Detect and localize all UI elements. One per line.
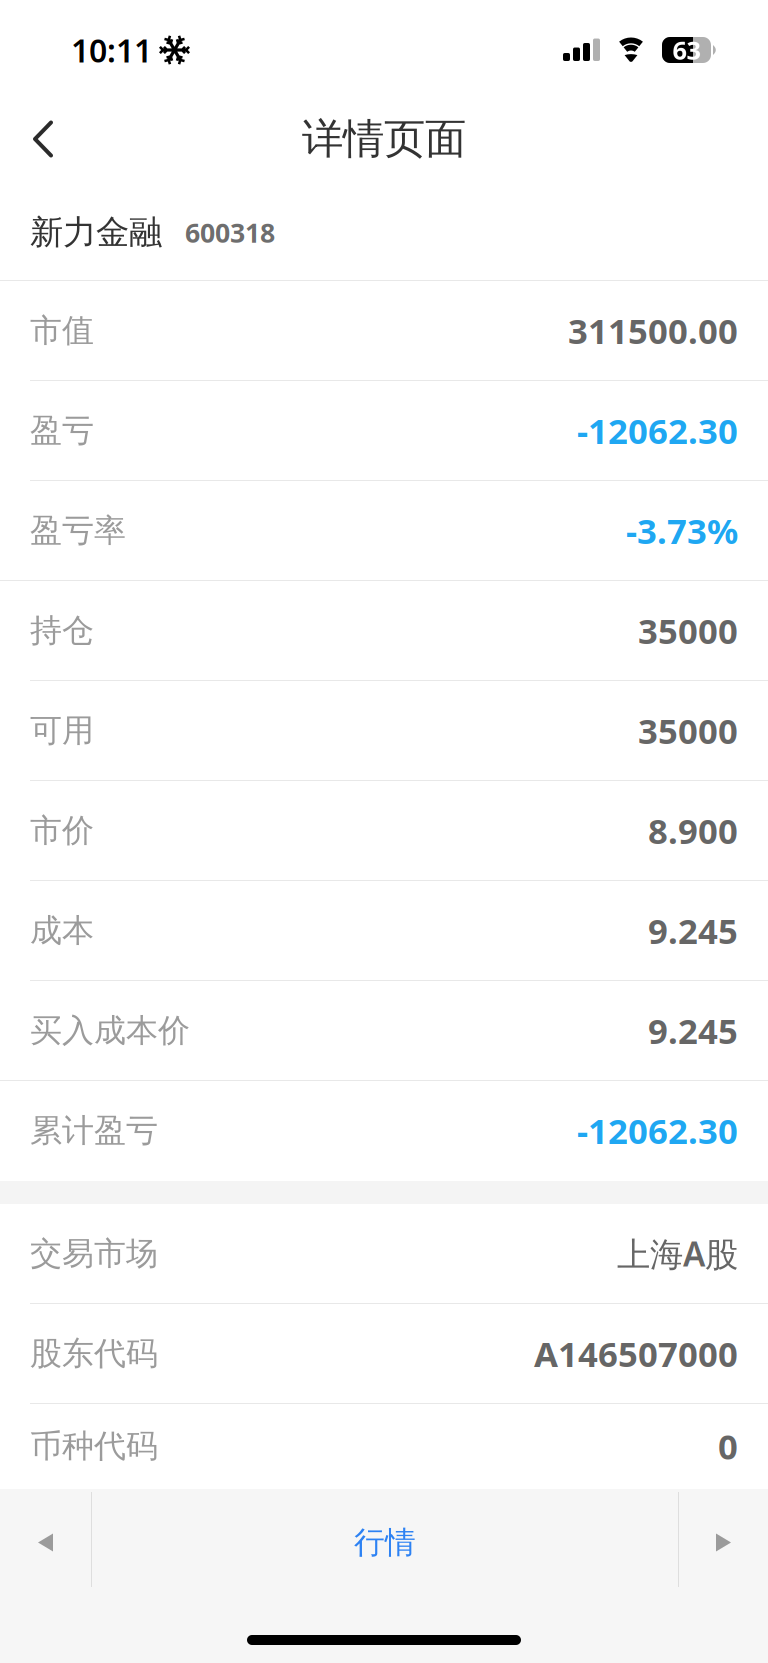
button[interactable]: 可用 <box>0 681 768 781</box>
button[interactable]: 持仓 <box>0 581 768 681</box>
staticText: 35000 <box>638 607 738 653</box>
button[interactable]: 盈亏 <box>0 381 768 481</box>
staticText: 币种代码 <box>30 1426 158 1466</box>
button[interactable]: 成本 <box>0 881 768 981</box>
staticText: -12062.30 <box>577 407 738 453</box>
staticText: 买入成本价 <box>30 1011 190 1050</box>
button[interactable]: 买入成本价 <box>0 981 768 1081</box>
staticText: 市价 <box>30 811 94 850</box>
staticText: 35000 <box>638 707 738 753</box>
button[interactable]: 盈亏率 <box>0 481 768 581</box>
button[interactable]: 行情 <box>92 1491 678 1594</box>
staticText: 0 <box>718 1423 738 1469</box>
button[interactable]: 累计盈亏 <box>0 1081 768 1181</box>
staticText: 上海A股 <box>617 1231 738 1276</box>
staticText: 9.245 <box>648 907 738 953</box>
staticText: 可用 <box>30 711 94 750</box>
staticText: -3.73% <box>626 507 738 553</box>
staticText: 600318 <box>185 215 275 250</box>
staticText: 新力金融 <box>30 212 162 253</box>
staticText: 311500.00 <box>568 307 738 353</box>
staticText: 9.245 <box>648 1007 738 1053</box>
staticText: A146507000 <box>534 1330 738 1376</box>
button[interactable]: 币种代码 <box>0 1404 768 1489</box>
button[interactable]: Back <box>0 100 78 178</box>
staticText: 盈亏率 <box>30 511 126 550</box>
button[interactable]: Previous <box>0 1491 91 1594</box>
staticText: 股东代码 <box>30 1334 158 1373</box>
staticText: 交易市场 <box>30 1234 158 1273</box>
staticText: 持仓 <box>30 611 94 650</box>
button[interactable]: 市值 <box>0 281 768 381</box>
staticText: 10:11 <box>71 29 152 71</box>
staticText: 8.900 <box>648 807 738 853</box>
button[interactable]: Next <box>679 1491 768 1594</box>
staticText: 市值 <box>30 311 94 350</box>
button[interactable]: 市价 <box>0 781 768 881</box>
staticText: -12062.30 <box>577 1107 738 1153</box>
staticText: 63 <box>672 33 700 67</box>
staticText: 详情页面 <box>302 114 466 164</box>
button[interactable]: 交易市场 <box>0 1204 768 1304</box>
staticText: 累计盈亏 <box>30 1111 158 1150</box>
staticText: 行情 <box>354 1524 416 1561</box>
staticText: 成本 <box>30 911 94 950</box>
button[interactable]: 股东代码 <box>0 1304 768 1404</box>
staticText: 盈亏 <box>30 411 94 450</box>
